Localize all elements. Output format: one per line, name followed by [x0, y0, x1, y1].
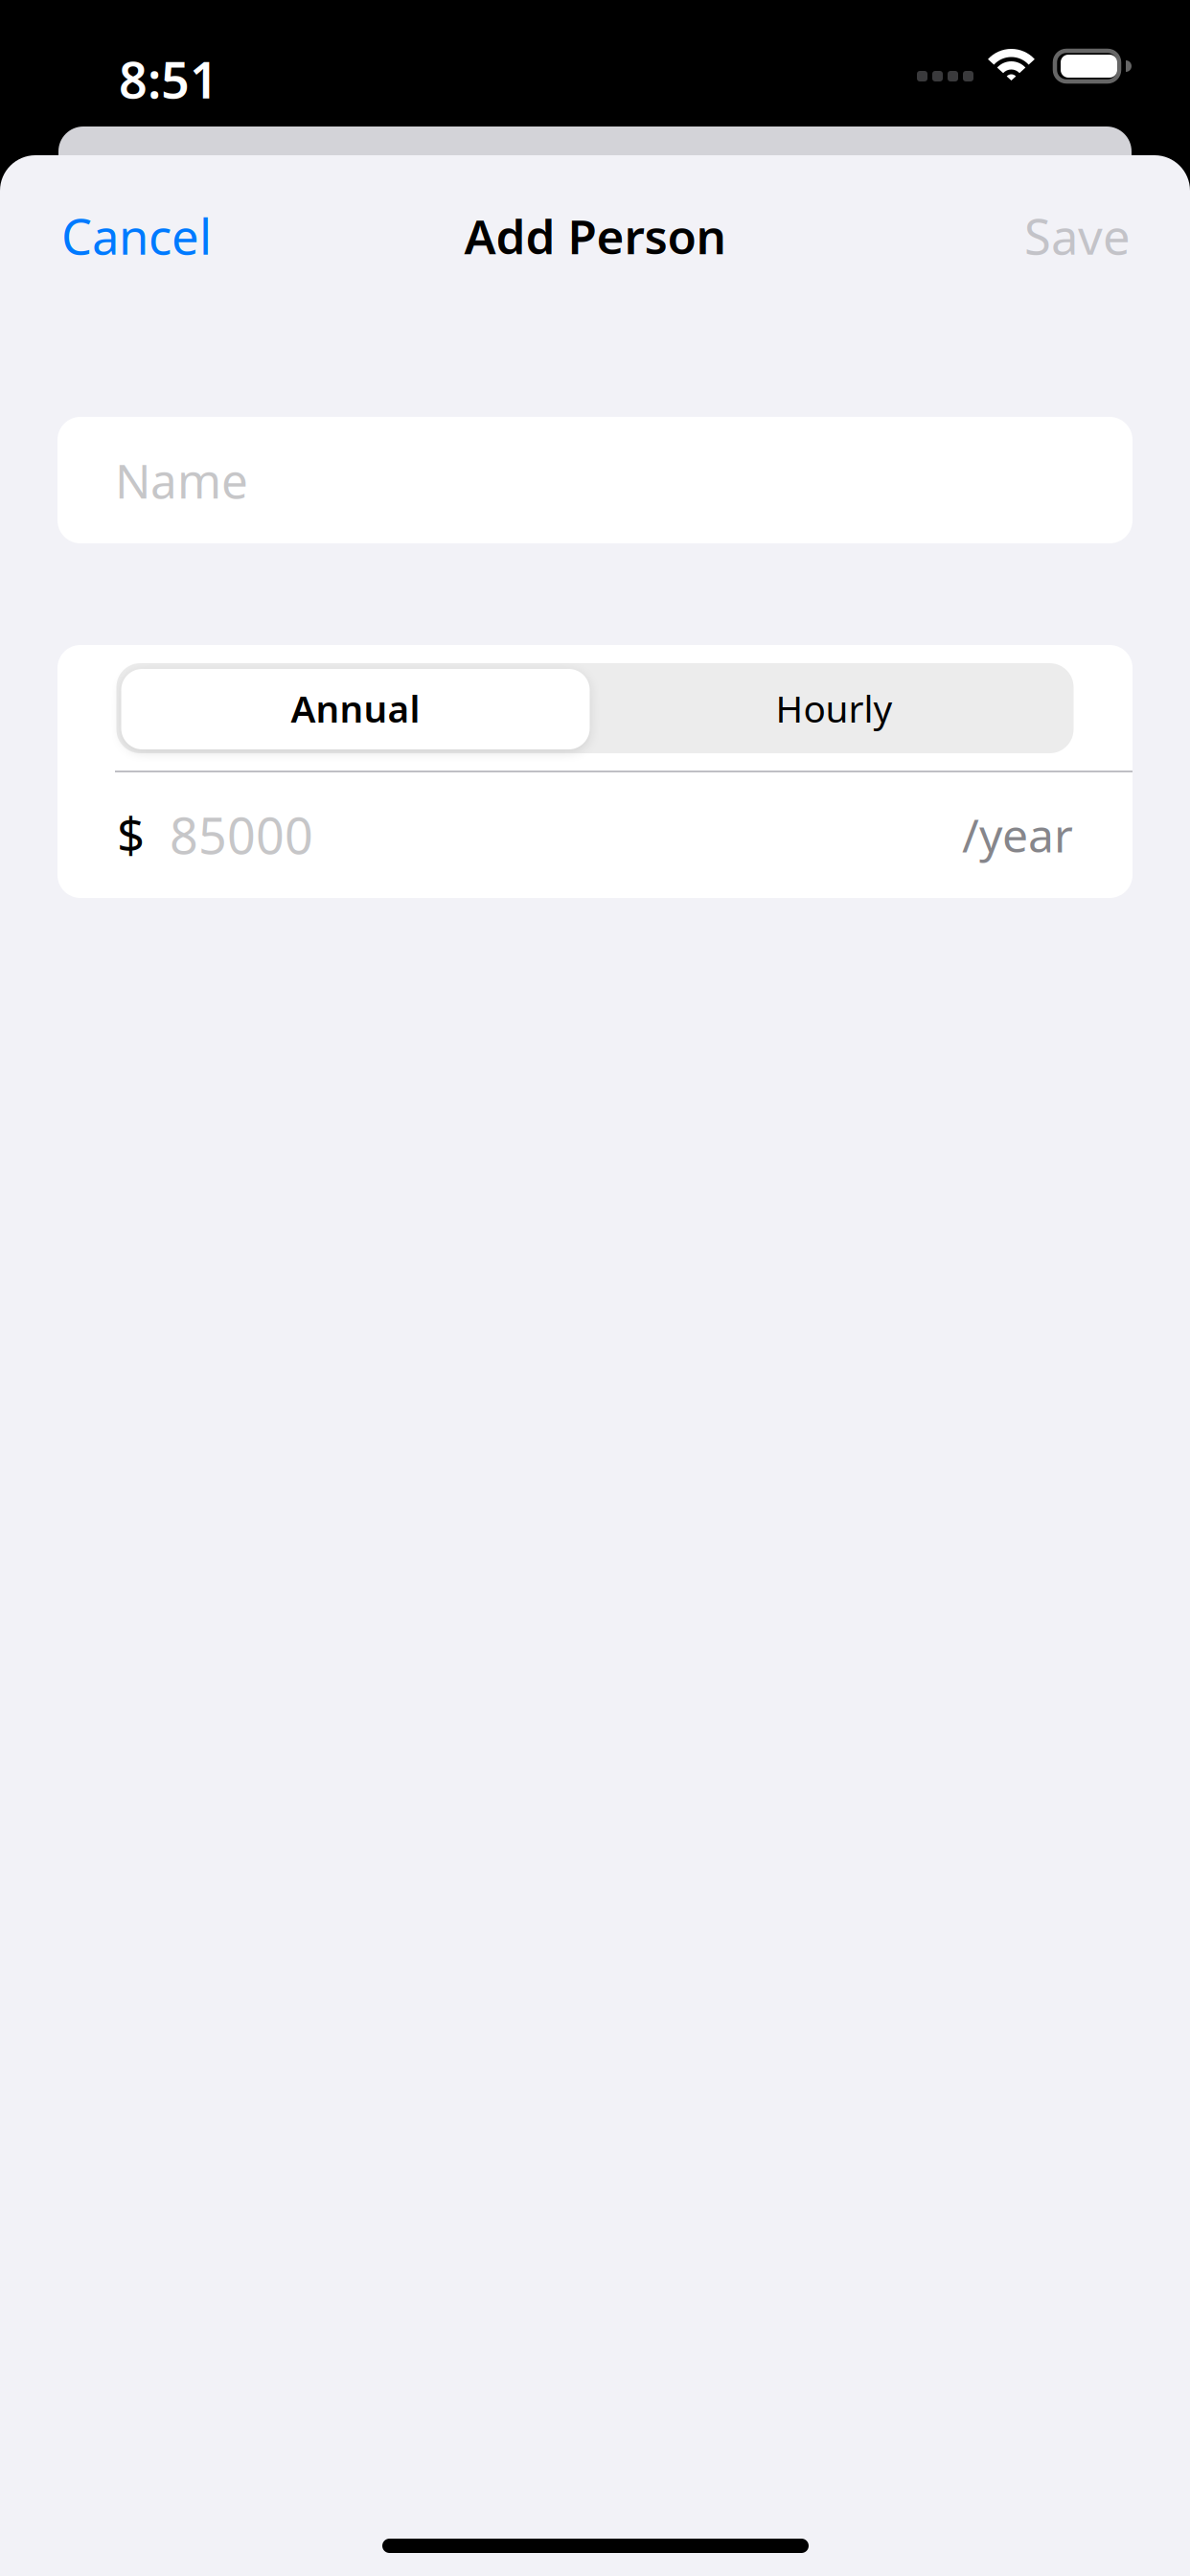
- staticText: Save: [1024, 204, 1131, 268]
- staticText: 85000: [170, 802, 313, 868]
- staticText: Name: [115, 449, 248, 511]
- button[interactable]: Cancel: [0, 179, 235, 293]
- staticText: Add Person: [464, 204, 726, 267]
- staticText: Cancel: [61, 204, 212, 268]
- button[interactable]: Name: [57, 417, 1133, 543]
- button[interactable]: Hourly: [595, 663, 1074, 753]
- staticText: /year: [962, 804, 1073, 865]
- staticText: Annual: [291, 684, 420, 733]
- staticText: 8:51: [119, 46, 218, 112]
- button[interactable]: Annual: [116, 663, 595, 753]
- button[interactable]: $: [57, 771, 1133, 898]
- button[interactable]: Save: [1001, 179, 1190, 293]
- staticText: $: [117, 803, 145, 867]
- staticText: Hourly: [776, 684, 892, 733]
